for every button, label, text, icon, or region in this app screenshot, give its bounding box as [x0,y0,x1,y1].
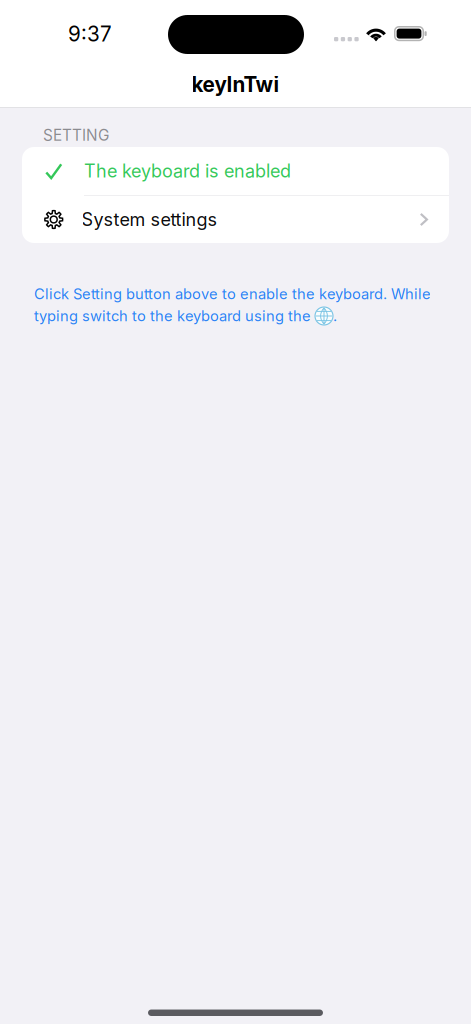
button[interactable]: System settings [22,196,449,243]
staticText: keyInTwi [191,72,279,97]
staticText: System settings [81,209,217,230]
button[interactable]: The keyboard is enabled [22,147,449,195]
staticText: typing switch to the keyboard using the [34,307,315,325]
staticText: 9:37 [68,21,112,46]
staticText: . [333,307,337,325]
staticText: SETTING [43,126,109,145]
staticText: The keyboard is enabled [84,160,291,182]
staticText: Click Setting button above to enable the… [34,285,431,303]
